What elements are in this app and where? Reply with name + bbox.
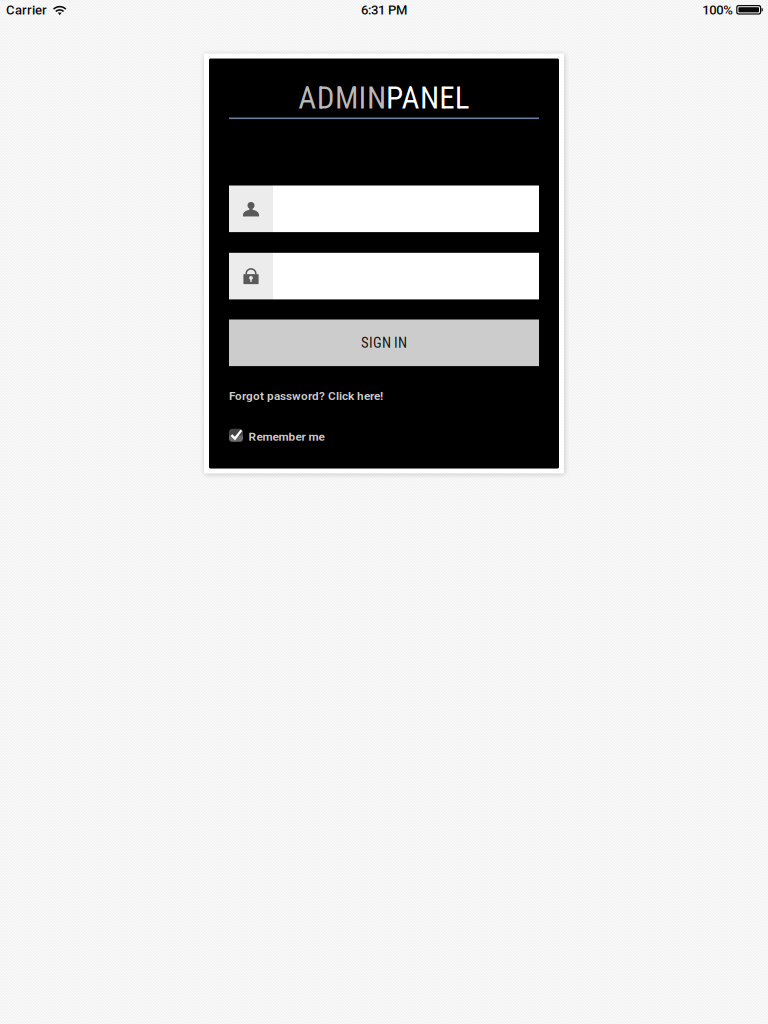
- staticText: PANEL: [386, 80, 470, 116]
- staticText: 100%: [702, 2, 733, 18]
- staticText: Forgot password? Click here!: [229, 389, 383, 403]
- staticText: SIGN IN: [361, 334, 407, 351]
- button[interactable]: Forgot password? Click here!: [229, 389, 539, 402]
- staticText: ADMIN: [298, 80, 386, 116]
- button[interactable]: Remember me: [229, 428, 539, 442]
- staticText: Carrier: [6, 2, 47, 18]
- button[interactable]: SIGN IN: [229, 319, 539, 366]
- staticText: 6:31 PM: [361, 2, 407, 18]
- staticText: Remember me: [248, 430, 324, 444]
